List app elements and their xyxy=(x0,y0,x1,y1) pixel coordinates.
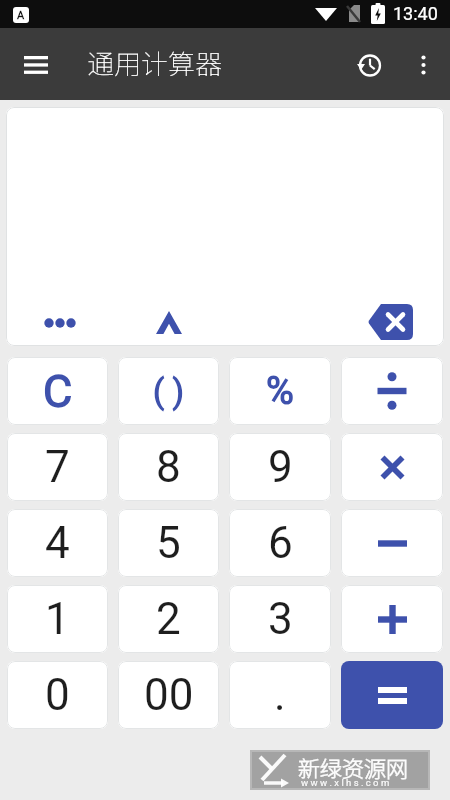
staticText: 13:40 xyxy=(393,3,438,24)
button[interactable]: . xyxy=(229,661,331,729)
button[interactable] xyxy=(346,42,392,88)
staticText: C xyxy=(43,365,73,418)
button[interactable]: 8 xyxy=(118,433,219,501)
button[interactable] xyxy=(341,509,443,577)
button[interactable]: % xyxy=(229,357,331,425)
button[interactable] xyxy=(341,357,443,425)
staticText: 4 xyxy=(45,517,70,569)
staticText: 1 xyxy=(45,593,70,645)
staticText: 新绿资源网 xyxy=(298,751,409,783)
staticText: . xyxy=(274,669,286,721)
button[interactable]: ( ) xyxy=(118,357,219,425)
button[interactable] xyxy=(341,433,443,501)
staticText: A xyxy=(17,9,25,22)
button[interactable] xyxy=(341,661,443,729)
button[interactable]: 1 xyxy=(7,585,108,653)
button[interactable]: 00 xyxy=(118,661,219,729)
staticText: 0 xyxy=(45,669,70,721)
button[interactable] xyxy=(38,304,84,342)
staticText: 5 xyxy=(156,517,181,569)
button[interactable]: 6 xyxy=(229,509,331,577)
button[interactable] xyxy=(341,585,443,653)
staticText: 2 xyxy=(156,593,181,645)
button[interactable]: 7 xyxy=(7,433,108,501)
button[interactable] xyxy=(12,41,60,89)
button[interactable] xyxy=(403,45,443,85)
staticText: 00 xyxy=(144,669,194,721)
staticText: 8 xyxy=(156,441,181,493)
staticText: 9 xyxy=(268,441,293,493)
button[interactable] xyxy=(145,300,193,344)
button[interactable]: 9 xyxy=(229,433,331,501)
staticText: % xyxy=(266,369,294,414)
button[interactable]: 3 xyxy=(229,585,331,653)
staticText: ( ) xyxy=(153,372,184,411)
button[interactable] xyxy=(361,297,419,346)
staticText: w w w . x l h s . c o m xyxy=(301,777,390,788)
button[interactable]: 4 xyxy=(7,509,108,577)
button[interactable]: 5 xyxy=(118,509,219,577)
button[interactable]: C xyxy=(7,357,108,425)
staticText: 3 xyxy=(268,593,293,645)
button[interactable]: 0 xyxy=(7,661,108,729)
staticText: 7 xyxy=(45,441,70,493)
staticText: 通用计算器 xyxy=(87,43,222,82)
staticText: 6 xyxy=(268,517,293,569)
button[interactable]: 2 xyxy=(118,585,219,653)
